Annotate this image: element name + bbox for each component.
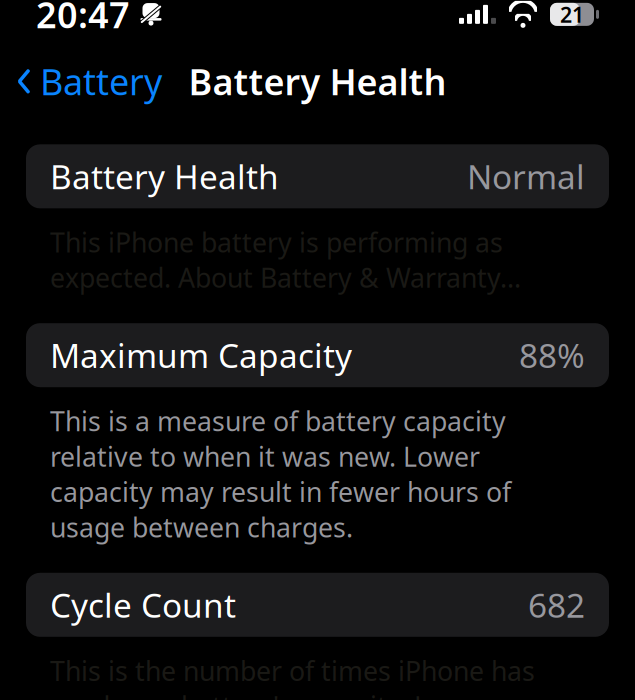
button[interactable]: Cycle Count xyxy=(26,573,609,637)
staticText: This is a measure of battery capacity re… xyxy=(50,403,511,545)
staticText: Battery xyxy=(40,57,162,105)
staticText: Maximum Capacity xyxy=(50,333,352,377)
staticText: 88% xyxy=(519,333,585,377)
button[interactable]: Battery Health xyxy=(26,144,609,208)
staticText: Battery Health xyxy=(50,154,279,198)
staticText: 682 xyxy=(528,583,585,627)
staticText: Battery Health xyxy=(188,57,446,105)
staticText: Normal xyxy=(467,154,585,198)
button[interactable]: Maximum Capacity xyxy=(26,323,609,387)
staticText: This is the number of times iPhone has u… xyxy=(50,653,579,700)
staticText: This iPhone battery is performing as exp… xyxy=(50,224,521,295)
button[interactable]: Battery xyxy=(0,51,162,111)
staticText: 21 xyxy=(560,0,584,28)
staticText: Cycle Count xyxy=(50,583,236,627)
staticText: 20:47 xyxy=(36,0,130,38)
